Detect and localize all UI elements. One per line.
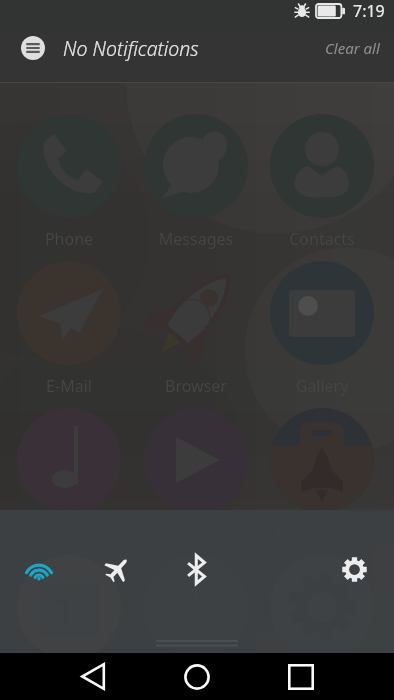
button[interactable]: Marketplace <box>270 408 374 544</box>
button[interactable]: Video <box>144 408 248 544</box>
staticText: Clear all <box>325 38 380 58</box>
button[interactable]: Home <box>161 653 233 700</box>
staticText: Calendar <box>17 669 121 691</box>
button[interactable]: Gallery <box>270 261 374 397</box>
staticText: No Notifications <box>63 35 199 62</box>
button[interactable]: Calendar <box>17 555 121 691</box>
button[interactable]: Phone <box>17 114 121 250</box>
staticText: 7:19 <box>353 0 385 22</box>
staticText: E-Mail <box>17 375 121 397</box>
staticText: Messages <box>144 228 248 250</box>
button[interactable]: Settings <box>270 555 374 691</box>
staticText: Browser <box>144 375 248 397</box>
staticText: Settings <box>270 669 374 691</box>
button[interactable]: Bluetooth <box>157 510 236 628</box>
button[interactable]: Wi-Fi <box>0 510 78 628</box>
button[interactable]: Music <box>17 408 121 544</box>
button[interactable]: Airplane mode <box>78 510 157 628</box>
button[interactable]: Contacts <box>270 114 374 250</box>
button[interactable]: Messages <box>144 114 248 250</box>
button[interactable]: Browser <box>144 261 248 397</box>
button[interactable]: Settings <box>315 510 394 628</box>
button[interactable]: Back <box>57 653 129 700</box>
button[interactable]: Clear all <box>311 30 394 66</box>
button[interactable]: Clock <box>144 555 248 691</box>
button[interactable]: E-Mail <box>17 261 121 397</box>
button[interactable]: Menu <box>21 36 45 60</box>
button[interactable]: Recents <box>265 653 337 700</box>
staticText: Clock <box>144 669 248 691</box>
staticText: Phone <box>17 228 121 250</box>
staticText: Contacts <box>270 228 374 250</box>
